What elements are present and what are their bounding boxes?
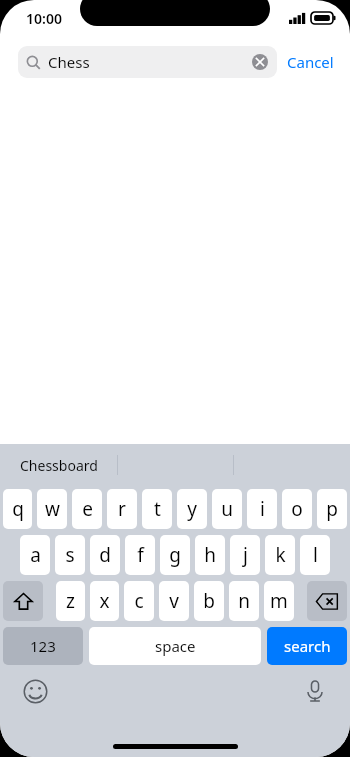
button[interactable]: Cancel [277, 48, 336, 76]
staticText: v [169, 588, 179, 614]
staticText: h [204, 542, 216, 568]
button[interactable]: q [3, 489, 32, 529]
staticText: a [30, 542, 41, 568]
button[interactable]: k [265, 535, 295, 575]
staticText: k [275, 542, 286, 568]
staticText: u [221, 496, 233, 522]
button[interactable]: Shift [3, 581, 43, 621]
button[interactable]: e [72, 489, 102, 529]
staticText: e [82, 496, 93, 522]
staticText: r [118, 496, 126, 522]
staticText: m [270, 588, 288, 614]
staticText: o [291, 496, 303, 522]
staticText: s [65, 542, 75, 568]
button[interactable]: w [37, 489, 67, 529]
button[interactable]: g [160, 535, 190, 575]
button[interactable]: space [89, 627, 261, 665]
staticText: w [45, 496, 60, 522]
button[interactable]: Clear text [251, 53, 269, 71]
staticText: Chess [48, 52, 90, 72]
button[interactable]: c [124, 581, 154, 621]
button[interactable]: i [247, 489, 277, 529]
button[interactable]: f [125, 535, 155, 575]
button[interactable]: r [107, 489, 137, 529]
button[interactable]: p [317, 489, 347, 529]
staticText: y [187, 496, 197, 522]
staticText: g [169, 542, 181, 568]
button[interactable]: n [229, 581, 259, 621]
staticText: z [66, 588, 75, 614]
button[interactable]: z [56, 581, 85, 621]
button[interactable]: h [195, 535, 225, 575]
button[interactable]: l [300, 535, 330, 575]
button[interactable]: t [142, 489, 172, 529]
button[interactable]: y [177, 489, 207, 529]
button[interactable]: x [90, 581, 119, 621]
staticText: search [284, 636, 331, 656]
staticText: n [238, 588, 250, 614]
staticText: p [326, 496, 338, 522]
button[interactable]: j [230, 535, 260, 575]
button[interactable]: Dictation [300, 676, 330, 706]
staticText: 10:00 [26, 9, 62, 28]
button[interactable]: search [267, 627, 347, 665]
staticText: q [12, 496, 24, 522]
button[interactable]: Chess [18, 46, 277, 78]
button[interactable]: Emoji [20, 676, 50, 706]
staticText: j [243, 542, 248, 568]
button[interactable]: v [159, 581, 189, 621]
button[interactable]: a [20, 535, 50, 575]
button[interactable]: d [90, 535, 120, 575]
staticText: f [137, 542, 144, 568]
button[interactable]: m [264, 581, 294, 621]
button[interactable]: b [194, 581, 224, 621]
staticText: x [99, 588, 110, 614]
staticText: Cancel [287, 52, 334, 72]
staticText: c [134, 588, 144, 614]
staticText: d [99, 542, 111, 568]
button[interactable]: Backspace [307, 581, 347, 621]
button[interactable]: u [212, 489, 242, 529]
button[interactable]: Chessboard [0, 444, 117, 486]
staticText: space [155, 636, 196, 656]
button[interactable]: o [282, 489, 312, 529]
button[interactable]: 123 [3, 627, 83, 665]
staticText: l [313, 542, 318, 568]
staticText: 123 [30, 636, 56, 656]
staticText: t [154, 496, 161, 522]
staticText: Chessboard [20, 456, 98, 475]
staticText: b [203, 588, 215, 614]
button[interactable]: s [55, 535, 85, 575]
staticText: i [260, 496, 265, 522]
